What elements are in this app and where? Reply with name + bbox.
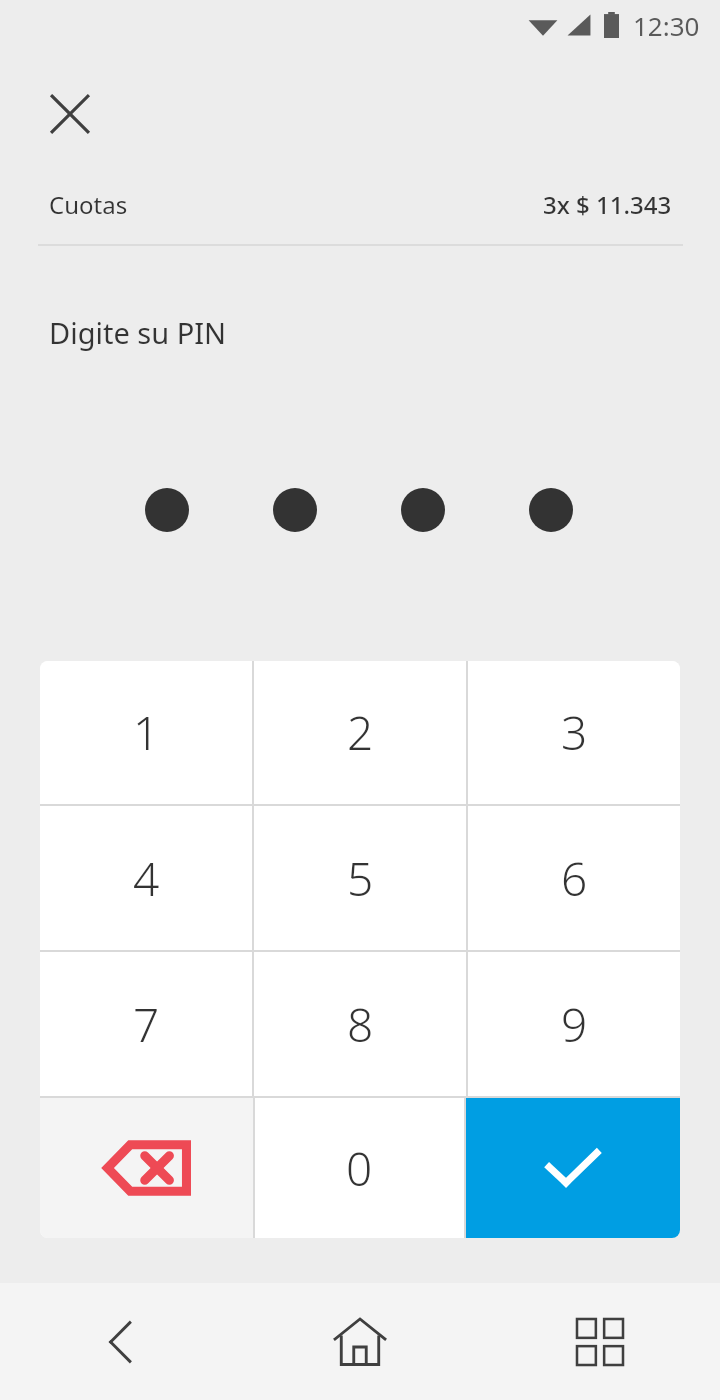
staticText: 7: [133, 993, 160, 1056]
button[interactable]: Home: [240, 1283, 480, 1400]
staticText: 9: [561, 993, 588, 1056]
button[interactable]: 2: [254, 661, 466, 804]
staticText: 12:30: [633, 8, 700, 43]
staticText: 6: [561, 847, 588, 910]
button[interactable]: 9: [468, 952, 680, 1096]
staticText: 2: [347, 701, 374, 764]
staticText: Digite su PIN: [49, 313, 227, 352]
staticText: 0: [346, 1137, 373, 1200]
staticText: 8: [347, 993, 374, 1056]
staticText: 3: [561, 701, 588, 764]
button[interactable]: 7: [40, 952, 252, 1096]
button[interactable]: Delete: [40, 1098, 253, 1238]
button[interactable]: Cuotas: [0, 176, 720, 232]
button[interactable]: 8: [254, 952, 466, 1096]
button[interactable]: 6: [468, 806, 680, 950]
button[interactable]: Recent apps: [480, 1283, 720, 1400]
button[interactable]: 0: [255, 1098, 464, 1238]
button[interactable]: 5: [254, 806, 466, 950]
button[interactable]: 4: [40, 806, 252, 950]
button[interactable]: 3: [468, 661, 680, 804]
staticText: 4: [133, 847, 160, 910]
staticText: Cuotas: [49, 188, 128, 221]
button[interactable]: Close: [32, 76, 108, 152]
staticText: 5: [347, 847, 374, 910]
button[interactable]: 1: [40, 661, 252, 804]
button[interactable]: Back: [0, 1283, 240, 1400]
button[interactable]: Confirm: [466, 1098, 680, 1238]
staticText: 3x $ 11.343: [543, 188, 672, 221]
staticText: 1: [133, 701, 160, 764]
